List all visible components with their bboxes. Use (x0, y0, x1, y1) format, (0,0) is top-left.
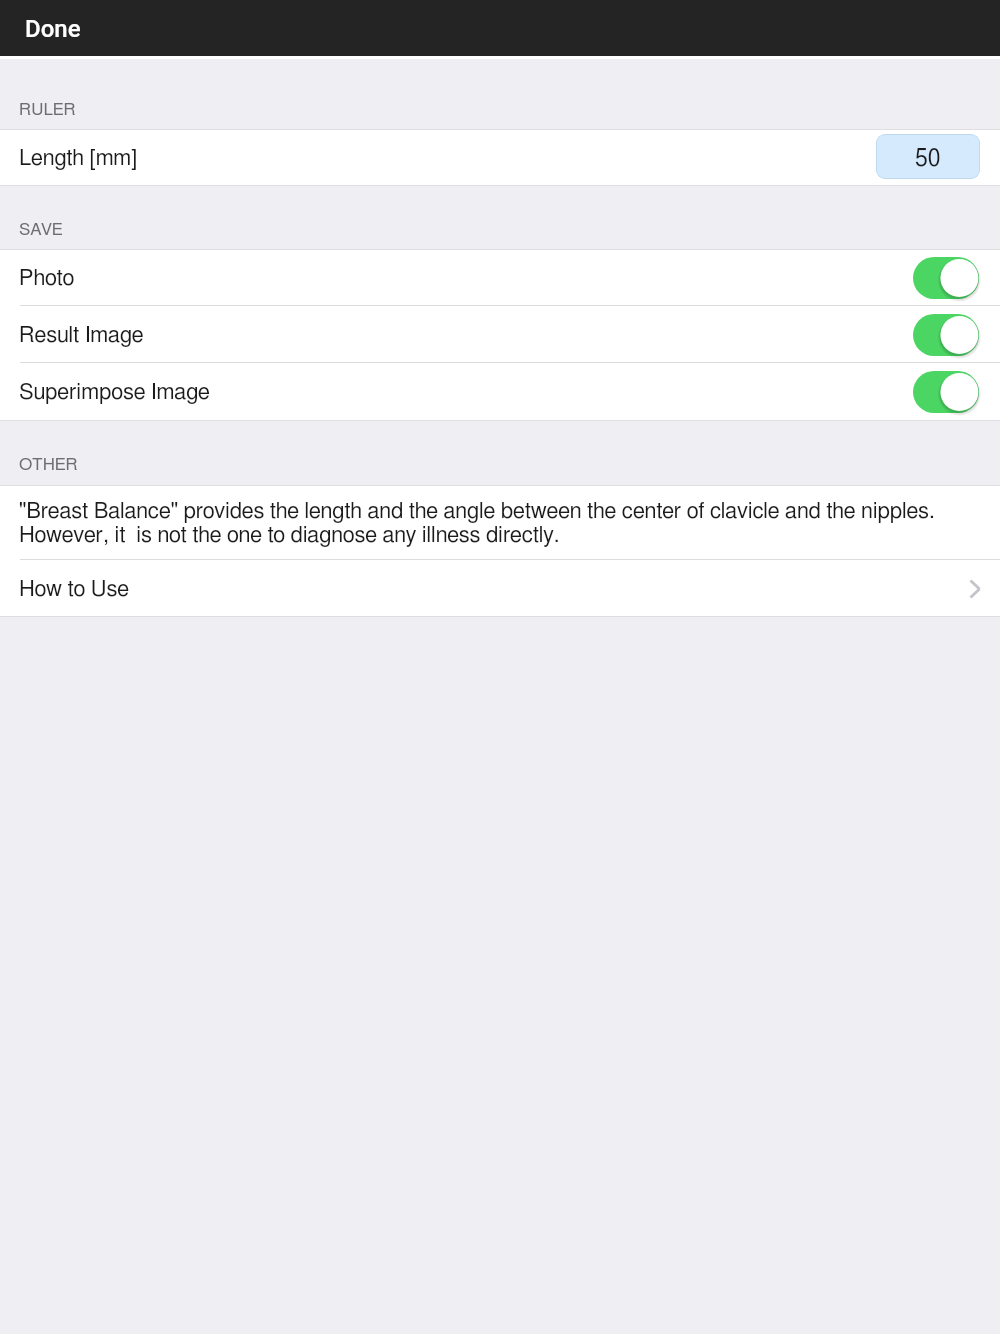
staticText: Length [mm] (19, 147, 138, 169)
staticText: How to Use (19, 578, 129, 600)
button[interactable]: 50 (876, 134, 980, 179)
button[interactable]: Length [mm] (0, 130, 1000, 185)
staticText: 50 (915, 148, 941, 171)
staticText: SAVE (19, 221, 63, 238)
staticText: "Breast Balance" provides the length and… (19, 499, 980, 547)
button[interactable]: Photo (0, 250, 1000, 306)
button[interactable]: Result Image (912, 313, 980, 357)
staticText: Done (25, 15, 81, 43)
button[interactable]: Result Image (0, 306, 1000, 363)
staticText: Superimpose Image (19, 381, 210, 403)
staticText: Photo (19, 267, 75, 289)
staticText: Result Image (19, 324, 144, 346)
button[interactable]: Done (0, 5, 101, 53)
button[interactable]: How to Use (0, 560, 1000, 616)
other: Open How to Use (969, 579, 981, 599)
staticText: RULER (19, 101, 76, 118)
staticText: OTHER (19, 456, 78, 473)
button[interactable]: Superimpose Image (912, 370, 980, 414)
button[interactable]: Superimpose Image (0, 363, 1000, 420)
button[interactable]: Photo (912, 256, 980, 300)
